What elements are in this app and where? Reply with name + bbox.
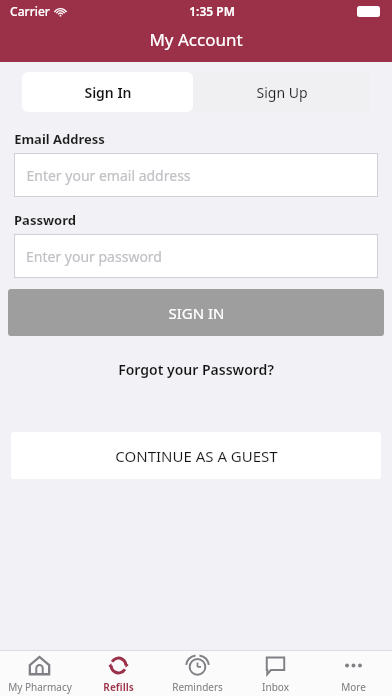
staticText: Refills <box>103 680 134 694</box>
staticText: Carrier <box>10 3 50 19</box>
staticText: Email Address <box>14 130 105 148</box>
button[interactable]: SIGN IN <box>8 289 384 336</box>
staticText: My Pharmacy <box>8 680 72 694</box>
staticText: Inbox <box>262 680 289 694</box>
button[interactable]: Refills <box>79 651 158 696</box>
staticText: Forgot your Password? <box>118 360 274 379</box>
staticText: My Account <box>149 28 243 51</box>
staticText: Password <box>14 211 76 229</box>
button[interactable]: Forgot your Password? <box>112 354 280 385</box>
button[interactable]: Sign Up <box>193 72 370 112</box>
staticText: Reminders <box>172 680 223 694</box>
button[interactable]: Enter your password <box>14 234 378 278</box>
staticText: CONTINUE AS A GUEST <box>115 446 278 466</box>
button[interactable]: Enter your email address <box>14 153 378 197</box>
staticText: Enter your email address <box>26 166 191 185</box>
staticText: Sign In <box>84 83 132 102</box>
staticText: Enter your password <box>26 247 162 266</box>
button[interactable]: More <box>314 651 392 696</box>
button[interactable]: Sign In <box>22 72 193 112</box>
button[interactable]: My Pharmacy <box>0 651 79 696</box>
staticText: Sign Up <box>256 83 308 102</box>
staticText: 1:35 PM <box>189 3 235 19</box>
staticText: More <box>341 680 366 694</box>
staticText: SIGN IN <box>168 303 225 323</box>
button[interactable]: Inbox <box>236 651 314 696</box>
button[interactable]: Reminders <box>158 651 236 696</box>
button[interactable]: CONTINUE AS A GUEST <box>11 432 381 479</box>
